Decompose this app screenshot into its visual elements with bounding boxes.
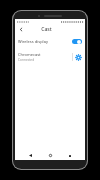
button[interactable]: Device settings [75,54,82,61]
staticText: Wireless display [18,39,48,44]
button[interactable]: Wireless display toggle [71,38,82,45]
staticText: Chromecast [18,52,41,57]
button[interactable]: Recent apps [66,152,73,159]
staticText: Cast [41,26,52,33]
button[interactable]: Back [27,152,34,159]
button[interactable]: Back [17,25,26,34]
button[interactable]: Chromecast [18,52,72,62]
staticText: Connected [18,58,35,62]
button[interactable]: Home [47,152,54,159]
button[interactable]: Wireless display [15,35,85,48]
